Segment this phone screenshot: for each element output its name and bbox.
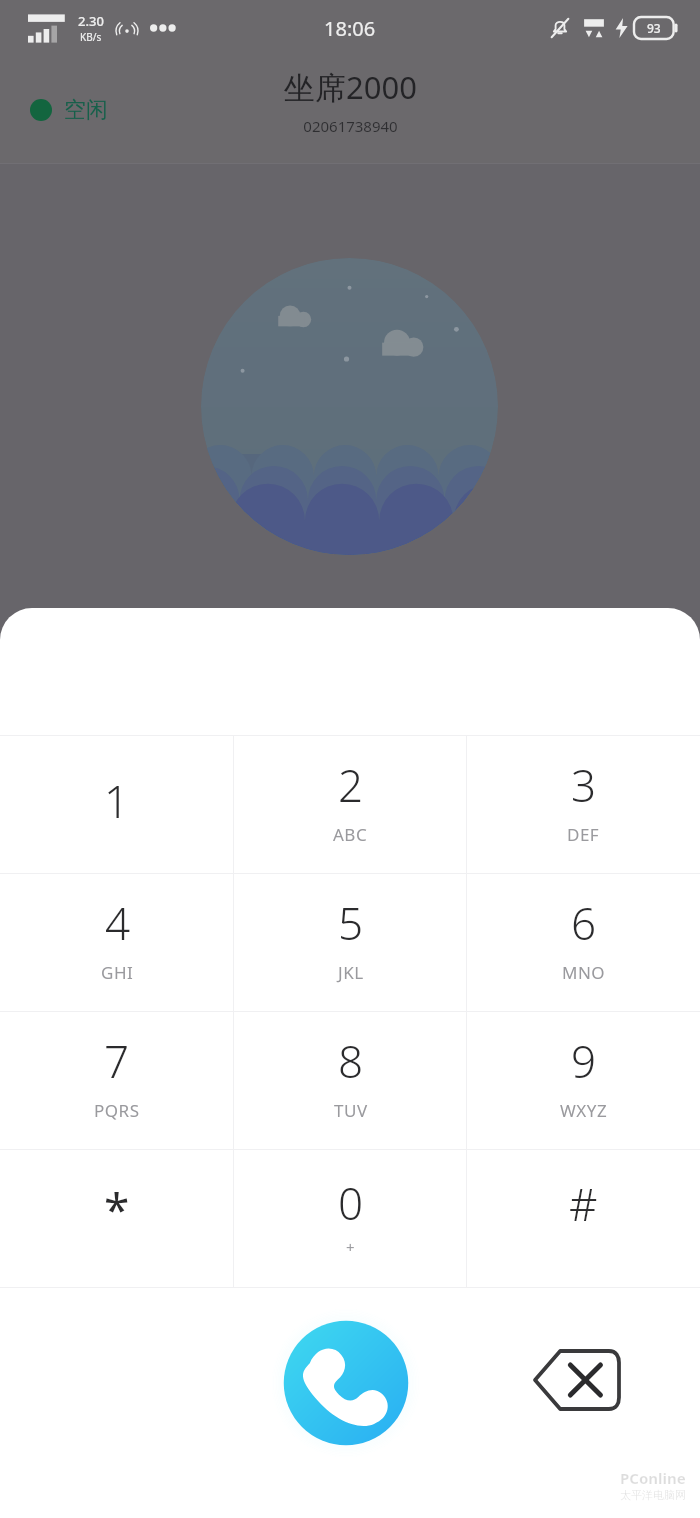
button[interactable]: 8 [234, 1012, 467, 1149]
staticText: 5 [338, 893, 364, 953]
button[interactable]: 1 [0, 736, 234, 873]
button[interactable]: Call [271, 1308, 421, 1458]
staticText: TUV [334, 1099, 368, 1122]
staticText: 6 [571, 893, 597, 953]
staticText: # [569, 1174, 598, 1234]
button[interactable]: Contact photo [201, 258, 498, 555]
button[interactable]: 6 [467, 874, 700, 1011]
staticText: 7 [104, 1031, 130, 1091]
staticText: 2 [338, 755, 364, 815]
staticText: 3 [571, 755, 597, 815]
button[interactable]: Delete [521, 1340, 633, 1420]
button[interactable]: # [467, 1150, 700, 1287]
staticText: 0 [338, 1173, 364, 1233]
staticText: GHI [101, 961, 134, 984]
staticText: PConline [620, 1468, 686, 1488]
button[interactable]: 4 [0, 874, 234, 1011]
button[interactable]: 0 [234, 1150, 467, 1287]
button[interactable]: * [0, 1150, 234, 1287]
staticText: 2.30 [78, 12, 104, 30]
staticText: KB/s [80, 30, 102, 44]
staticText: MNO [562, 961, 606, 984]
staticText: 18:06 [324, 15, 376, 42]
staticText: ABC [333, 823, 368, 846]
staticText: 1 [104, 771, 130, 831]
staticText: 9 [571, 1031, 597, 1091]
button[interactable]: 9 [467, 1012, 700, 1149]
staticText: JKL [338, 961, 364, 984]
staticText: 4 [105, 893, 131, 953]
staticText: PQRS [94, 1099, 140, 1122]
staticText: 02061738940 [303, 116, 398, 136]
staticText: 坐席2000 [284, 66, 417, 108]
staticText: + [346, 1237, 356, 1257]
button[interactable]: 7 [0, 1012, 234, 1149]
staticText: DEF [567, 823, 600, 846]
staticText: 空闲 [64, 96, 108, 124]
staticText: 太平洋电脑网 [620, 1488, 686, 1502]
button[interactable]: 空闲 [26, 92, 112, 128]
button[interactable]: 2 [234, 736, 467, 873]
staticText: 93 [647, 20, 661, 36]
button[interactable]: 5 [234, 874, 467, 1011]
staticText: 8 [338, 1031, 364, 1091]
staticText: * [104, 1178, 130, 1241]
staticText: WXYZ [560, 1099, 608, 1122]
button[interactable]: 3 [467, 736, 700, 873]
